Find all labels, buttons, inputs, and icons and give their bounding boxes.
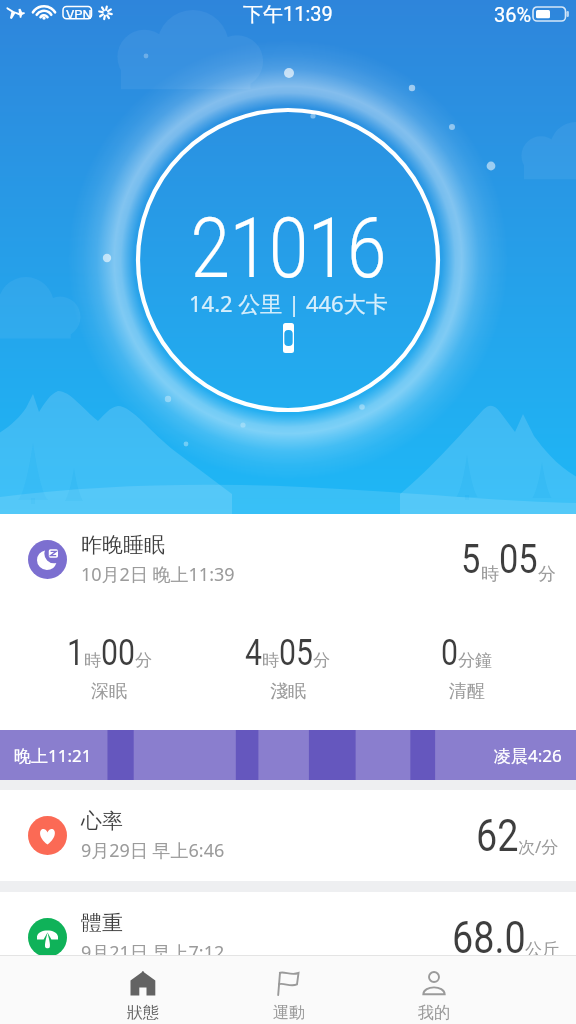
staticText: 4	[245, 632, 263, 674]
button[interactable]: 體重	[0, 892, 576, 983]
button[interactable]: 昨晚睡眠	[0, 514, 576, 730]
staticText: 分	[135, 650, 152, 671]
staticText: 36%	[494, 3, 532, 26]
staticText: 5	[461, 535, 481, 583]
staticText: 時	[481, 563, 499, 586]
staticText: 21016	[191, 199, 386, 297]
staticText: 運動	[273, 1003, 305, 1023]
staticText: 凌晨4:26	[494, 744, 562, 767]
button[interactable]: 心率	[0, 790, 576, 881]
staticText: 時	[262, 650, 279, 671]
staticText: 9月29日 早上6:46	[81, 838, 225, 863]
staticText: 分鐘	[458, 650, 492, 671]
staticText: 淺眠	[270, 680, 306, 703]
button[interactable]: 我的	[361, 956, 506, 1024]
button[interactable]: 晚上11:21	[0, 730, 576, 780]
staticText: 體重	[81, 910, 123, 936]
staticText: 深眠	[91, 680, 127, 703]
staticText: 05	[499, 535, 538, 583]
staticText: 狀態	[127, 1003, 159, 1023]
staticText: 清醒	[449, 680, 485, 703]
staticText: 心率	[81, 808, 123, 834]
staticText: 晚上11:21	[14, 744, 92, 767]
staticText: 14.2 公里 | 446大卡	[189, 288, 388, 318]
staticText: 公斤	[525, 939, 559, 960]
staticText: 次/分	[518, 835, 559, 858]
staticText: 10月2日 晚上11:39	[81, 562, 235, 587]
staticText: 昨晚睡眠	[81, 532, 165, 558]
staticText: VPN	[66, 7, 92, 22]
staticText: 62	[476, 809, 519, 862]
staticText: 9月21日 早上7:12	[81, 940, 225, 965]
button[interactable]: 狀態	[70, 956, 216, 1024]
staticText: 05	[279, 632, 313, 674]
staticText: 時	[84, 650, 101, 671]
staticText: 下午11:39	[243, 2, 333, 27]
staticText: 分	[538, 563, 556, 586]
button[interactable]: 運動	[216, 956, 361, 1024]
staticText: 00	[101, 632, 135, 674]
staticText: 我的	[418, 1003, 450, 1023]
staticText: 分	[313, 650, 330, 671]
staticText: 0	[441, 632, 459, 674]
staticText: 68.0	[452, 911, 526, 964]
staticText: 1	[67, 632, 85, 674]
